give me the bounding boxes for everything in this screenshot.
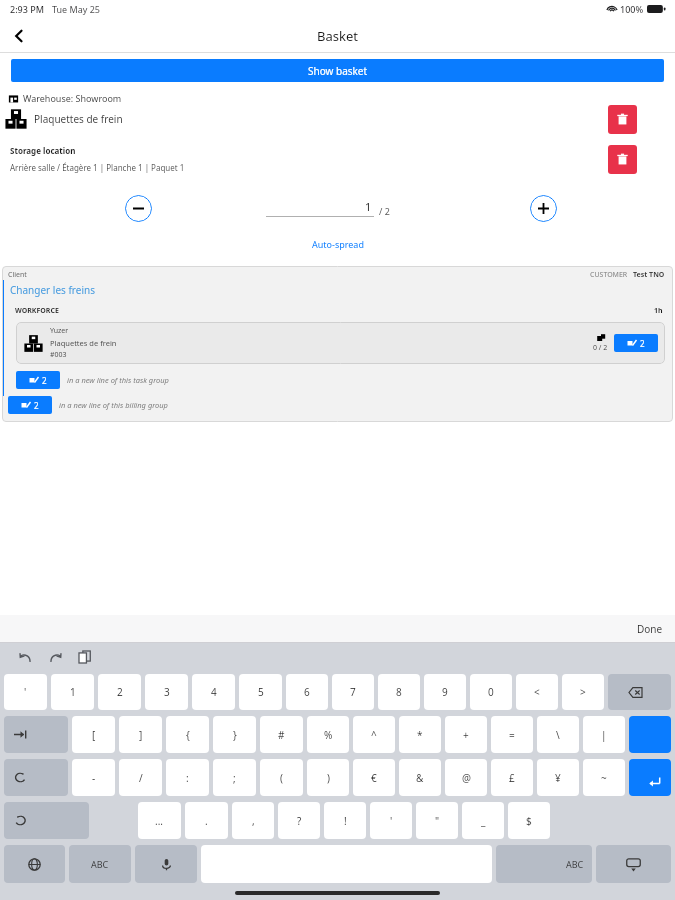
staticText: % bbox=[324, 728, 333, 742]
staticText: 8 bbox=[396, 685, 402, 699]
staticText: Plaquettes de frein bbox=[50, 338, 117, 348]
staticText: Yuzer bbox=[50, 326, 69, 336]
staticText: in a new line of this task group bbox=[67, 375, 169, 385]
button[interactable]: ABC bbox=[496, 845, 592, 883]
button[interactable]: ' bbox=[4, 674, 47, 710]
button[interactable]: ? bbox=[278, 802, 320, 839]
staticText: Changer les freins bbox=[10, 283, 95, 297]
button[interactable]: ! bbox=[324, 802, 366, 839]
button[interactable]: Yuzer bbox=[16, 322, 665, 364]
button[interactable]: 2 bbox=[8, 396, 52, 414]
button[interactable]: Done bbox=[637, 622, 663, 636]
button[interactable]: £ bbox=[491, 759, 533, 796]
button[interactable]: 7 bbox=[332, 674, 374, 710]
button[interactable]: 9 bbox=[424, 674, 466, 710]
staticText: - bbox=[92, 771, 96, 785]
button[interactable]: $ bbox=[508, 802, 550, 839]
button[interactable]: Auto-spread bbox=[308, 234, 368, 254]
button[interactable]: = bbox=[491, 716, 533, 753]
button[interactable] bbox=[4, 845, 65, 883]
button[interactable]: ) bbox=[307, 759, 349, 796]
staticText: { bbox=[186, 728, 190, 742]
button[interactable]: Delete bbox=[608, 145, 637, 174]
button[interactable]: 0 bbox=[470, 674, 512, 710]
staticText: 2 bbox=[117, 685, 123, 699]
button[interactable] bbox=[629, 716, 671, 753]
button[interactable]: Undo bbox=[14, 646, 36, 668]
button[interactable]: Redo bbox=[44, 646, 66, 668]
button[interactable]: ^ bbox=[353, 716, 395, 753]
button[interactable]: > bbox=[562, 674, 604, 710]
button[interactable]: 6 bbox=[286, 674, 328, 710]
button[interactable]: ( bbox=[260, 759, 303, 796]
staticText: @ bbox=[462, 771, 471, 785]
staticText: = bbox=[509, 728, 515, 742]
button[interactable]: Decrease bbox=[125, 195, 152, 222]
button[interactable]: 2 bbox=[16, 371, 60, 389]
button[interactable]: . bbox=[185, 802, 228, 839]
staticText: $ bbox=[526, 814, 532, 828]
button[interactable]: ; bbox=[213, 759, 256, 796]
button[interactable]: # bbox=[260, 716, 303, 753]
button[interactable]: ~ bbox=[583, 759, 625, 796]
button[interactable]: 8 bbox=[378, 674, 420, 710]
staticText: Warehouse: Showroom bbox=[23, 92, 122, 104]
button[interactable]: / bbox=[119, 759, 162, 796]
button[interactable]: [ bbox=[72, 716, 115, 753]
staticText: Auto-spread bbox=[312, 238, 364, 250]
button[interactable]: - bbox=[72, 759, 115, 796]
button[interactable]: 4 bbox=[192, 674, 235, 710]
button[interactable]: " bbox=[416, 802, 458, 839]
button[interactable]: \ bbox=[537, 716, 579, 753]
staticText: ¥ bbox=[555, 771, 561, 785]
staticText: Done bbox=[637, 622, 663, 636]
button[interactable]: Back bbox=[4, 21, 34, 51]
button[interactable]: * bbox=[399, 716, 441, 753]
staticText: " bbox=[435, 814, 440, 828]
button[interactable] bbox=[629, 759, 671, 796]
button[interactable]: _ bbox=[462, 802, 504, 839]
staticText: 100% bbox=[620, 3, 644, 15]
button[interactable]: ] bbox=[119, 716, 162, 753]
button[interactable]: 2 bbox=[98, 674, 141, 710]
button[interactable]: , bbox=[232, 802, 274, 839]
button[interactable]: @ bbox=[445, 759, 487, 796]
staticText: ' bbox=[390, 814, 393, 828]
staticText: Plaquettes de frein bbox=[34, 112, 123, 126]
button[interactable]: ABC bbox=[69, 845, 131, 883]
button[interactable] bbox=[4, 759, 68, 796]
button[interactable]: } bbox=[213, 716, 256, 753]
button[interactable] bbox=[4, 716, 68, 753]
staticText: Test TNO bbox=[633, 270, 665, 280]
button[interactable]: 2 bbox=[614, 334, 658, 352]
button[interactable] bbox=[596, 845, 671, 883]
button[interactable]: : bbox=[166, 759, 209, 796]
button[interactable]: % bbox=[307, 716, 349, 753]
button[interactable]: Paste bbox=[74, 646, 96, 668]
button[interactable]: Delete bbox=[608, 105, 637, 134]
button[interactable]: Show basket bbox=[11, 59, 664, 82]
button[interactable]: € bbox=[353, 759, 395, 796]
button[interactable]: 5 bbox=[239, 674, 282, 710]
staticText: ? bbox=[297, 814, 302, 828]
staticText: 3 bbox=[164, 685, 170, 699]
button[interactable]: ' bbox=[370, 802, 412, 839]
button[interactable]: 1 bbox=[51, 674, 94, 710]
button[interactable] bbox=[608, 674, 671, 710]
button[interactable]: ... bbox=[138, 802, 181, 839]
staticText: 2 bbox=[34, 400, 39, 411]
button[interactable] bbox=[4, 802, 89, 839]
button[interactable]: Increase bbox=[530, 195, 557, 222]
button[interactable]: | bbox=[583, 716, 625, 753]
button[interactable]: & bbox=[399, 759, 441, 796]
staticText: > bbox=[580, 685, 586, 699]
staticText: ! bbox=[344, 814, 347, 828]
button[interactable]: + bbox=[445, 716, 487, 753]
button[interactable]: ¥ bbox=[537, 759, 579, 796]
staticText: in a new line of this billing group bbox=[59, 400, 168, 410]
button[interactable]: 3 bbox=[145, 674, 188, 710]
button[interactable]: { bbox=[166, 716, 209, 753]
button[interactable]: < bbox=[516, 674, 558, 710]
button[interactable] bbox=[135, 845, 197, 883]
